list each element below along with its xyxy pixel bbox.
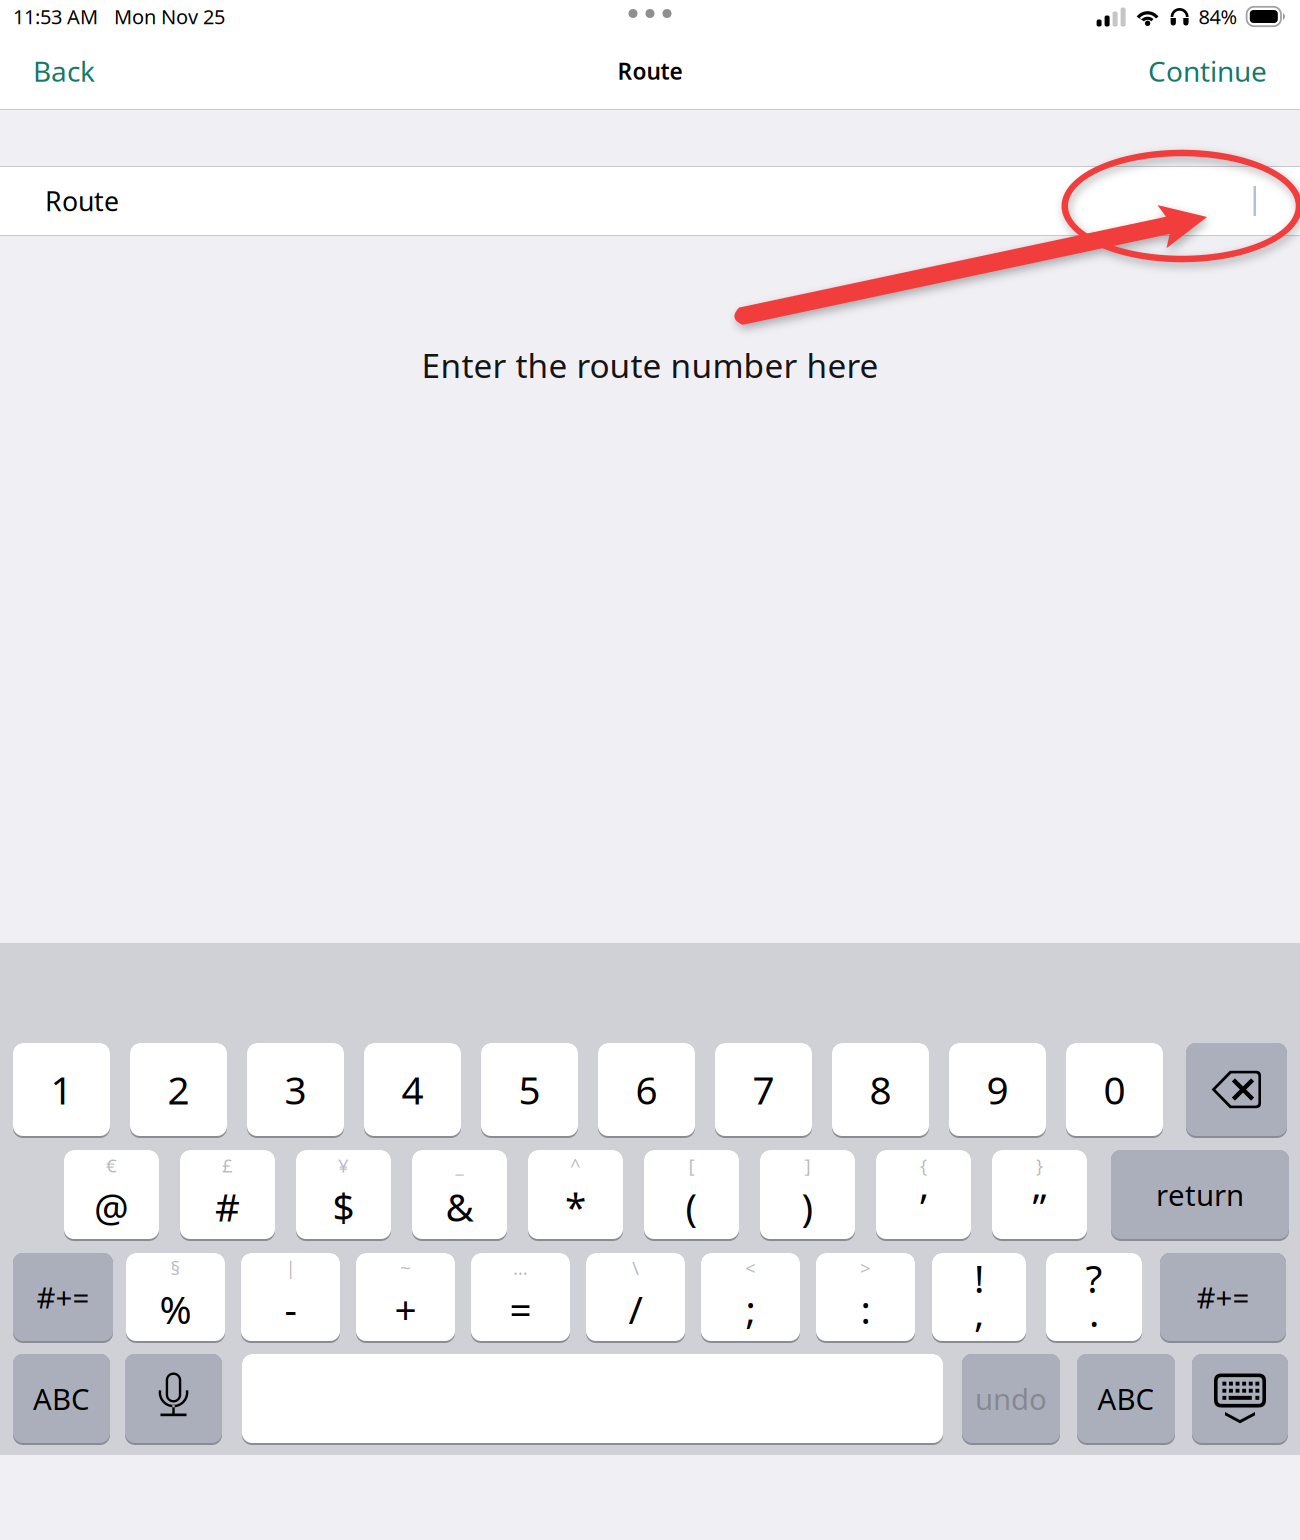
staticText: #+= [1196,1277,1249,1316]
staticText: 5 [518,1064,540,1115]
staticText: ~ [400,1255,411,1280]
staticText: § [170,1255,180,1280]
button[interactable]: § [126,1253,225,1341]
button[interactable]: { [876,1150,971,1239]
staticText: 2 [167,1064,189,1115]
staticText: Route [45,183,119,219]
staticText: , [974,1286,984,1338]
button[interactable]: 2 [130,1043,227,1136]
button[interactable]: Hide keyboard [1192,1354,1288,1443]
staticText: \ [632,1255,639,1280]
button[interactable]: ABC [1077,1354,1175,1443]
staticText: 6 [635,1064,657,1115]
staticText: Route [617,56,682,86]
staticText: ^ [570,1153,581,1178]
staticText: @ [94,1181,129,1232]
staticText: € [106,1153,117,1178]
staticText: ! [974,1252,984,1304]
staticText: [ [688,1153,694,1178]
staticText: ] [804,1153,810,1178]
button[interactable]: ! [932,1253,1026,1341]
button[interactable]: Dictate [125,1354,222,1443]
staticText: ? [1085,1252,1102,1304]
button[interactable]: #+= [1160,1253,1286,1341]
button[interactable]: _ [412,1150,507,1239]
staticText: > [860,1255,871,1280]
button[interactable]: [ [644,1150,739,1239]
staticText: ’ [920,1181,927,1232]
staticText: - [284,1283,296,1334]
staticText: 1 [50,1064,72,1115]
staticText: 8 [869,1064,891,1115]
staticText: 9 [986,1064,1008,1115]
button[interactable]: Continue [1136,42,1279,100]
button[interactable]: ? [1046,1253,1142,1341]
staticText: ; [745,1283,755,1334]
button[interactable]: 3 [247,1043,344,1136]
staticText: # [215,1181,240,1232]
staticText: 3 [284,1064,306,1115]
button[interactable]: < [701,1253,800,1341]
staticText: < [745,1255,756,1280]
staticText: 4 [401,1064,423,1115]
staticText: ABC [33,1379,90,1418]
staticText: | [285,1255,295,1280]
staticText: 7 [752,1064,774,1115]
button[interactable]: ~ [356,1253,455,1341]
staticText: & [445,1181,473,1232]
staticText: * [565,1181,586,1232]
staticText: ( [685,1181,697,1232]
staticText: _ [455,1153,463,1178]
staticText: ) [801,1181,813,1232]
button[interactable]: 6 [598,1043,695,1136]
staticText: / [628,1283,642,1334]
button[interactable]: 1 [13,1043,110,1136]
staticText: ” [1032,1181,1046,1232]
button[interactable]: undo [962,1354,1060,1443]
button[interactable]: #+= [13,1253,113,1341]
staticText: { [920,1153,927,1178]
staticText: 11:53 AM [13,3,98,30]
button[interactable]: ABC [13,1354,110,1443]
button[interactable]: 9 [949,1043,1046,1136]
button[interactable]: £ [180,1150,275,1239]
staticText: : [860,1283,870,1334]
staticText: Mon Nov 25 [114,3,225,30]
button[interactable]: 7 [715,1043,812,1136]
staticText: = [509,1283,531,1334]
staticText: ABC [1097,1379,1154,1418]
button[interactable]: } [992,1150,1087,1239]
staticText: Back [33,52,95,90]
staticText: #+= [36,1277,89,1316]
button[interactable]: ^ [528,1150,623,1239]
button[interactable]: Back [21,42,107,100]
button[interactable]: ] [760,1150,855,1239]
staticText: £ [222,1153,233,1178]
button[interactable]: return [1111,1150,1289,1239]
staticText: } [1036,1153,1043,1178]
staticText: % [159,1283,191,1334]
button[interactable]: Delete [1186,1043,1287,1136]
staticText: $ [332,1181,354,1232]
staticText: . [1089,1286,1099,1338]
button[interactable]: 4 [364,1043,461,1136]
staticText: Continue [1148,52,1267,90]
button[interactable]: | [241,1253,340,1341]
button[interactable]: 0 [1066,1043,1163,1136]
staticText: 0 [1103,1064,1125,1115]
staticText: … [513,1255,528,1280]
staticText: undo [975,1379,1047,1418]
button[interactable]: € [64,1150,159,1239]
staticText: + [394,1283,416,1334]
staticText: 84% [1199,3,1238,30]
staticText: return [1156,1175,1244,1214]
button[interactable]: 5 [481,1043,578,1136]
button[interactable]: \ [586,1253,685,1341]
button[interactable]: > [816,1253,915,1341]
staticText: ¥ [338,1153,349,1178]
button[interactable]: ¥ [296,1150,391,1239]
button[interactable]: … [471,1253,570,1341]
button[interactable]: 8 [832,1043,929,1136]
staticText: Enter the route number here [421,343,878,387]
